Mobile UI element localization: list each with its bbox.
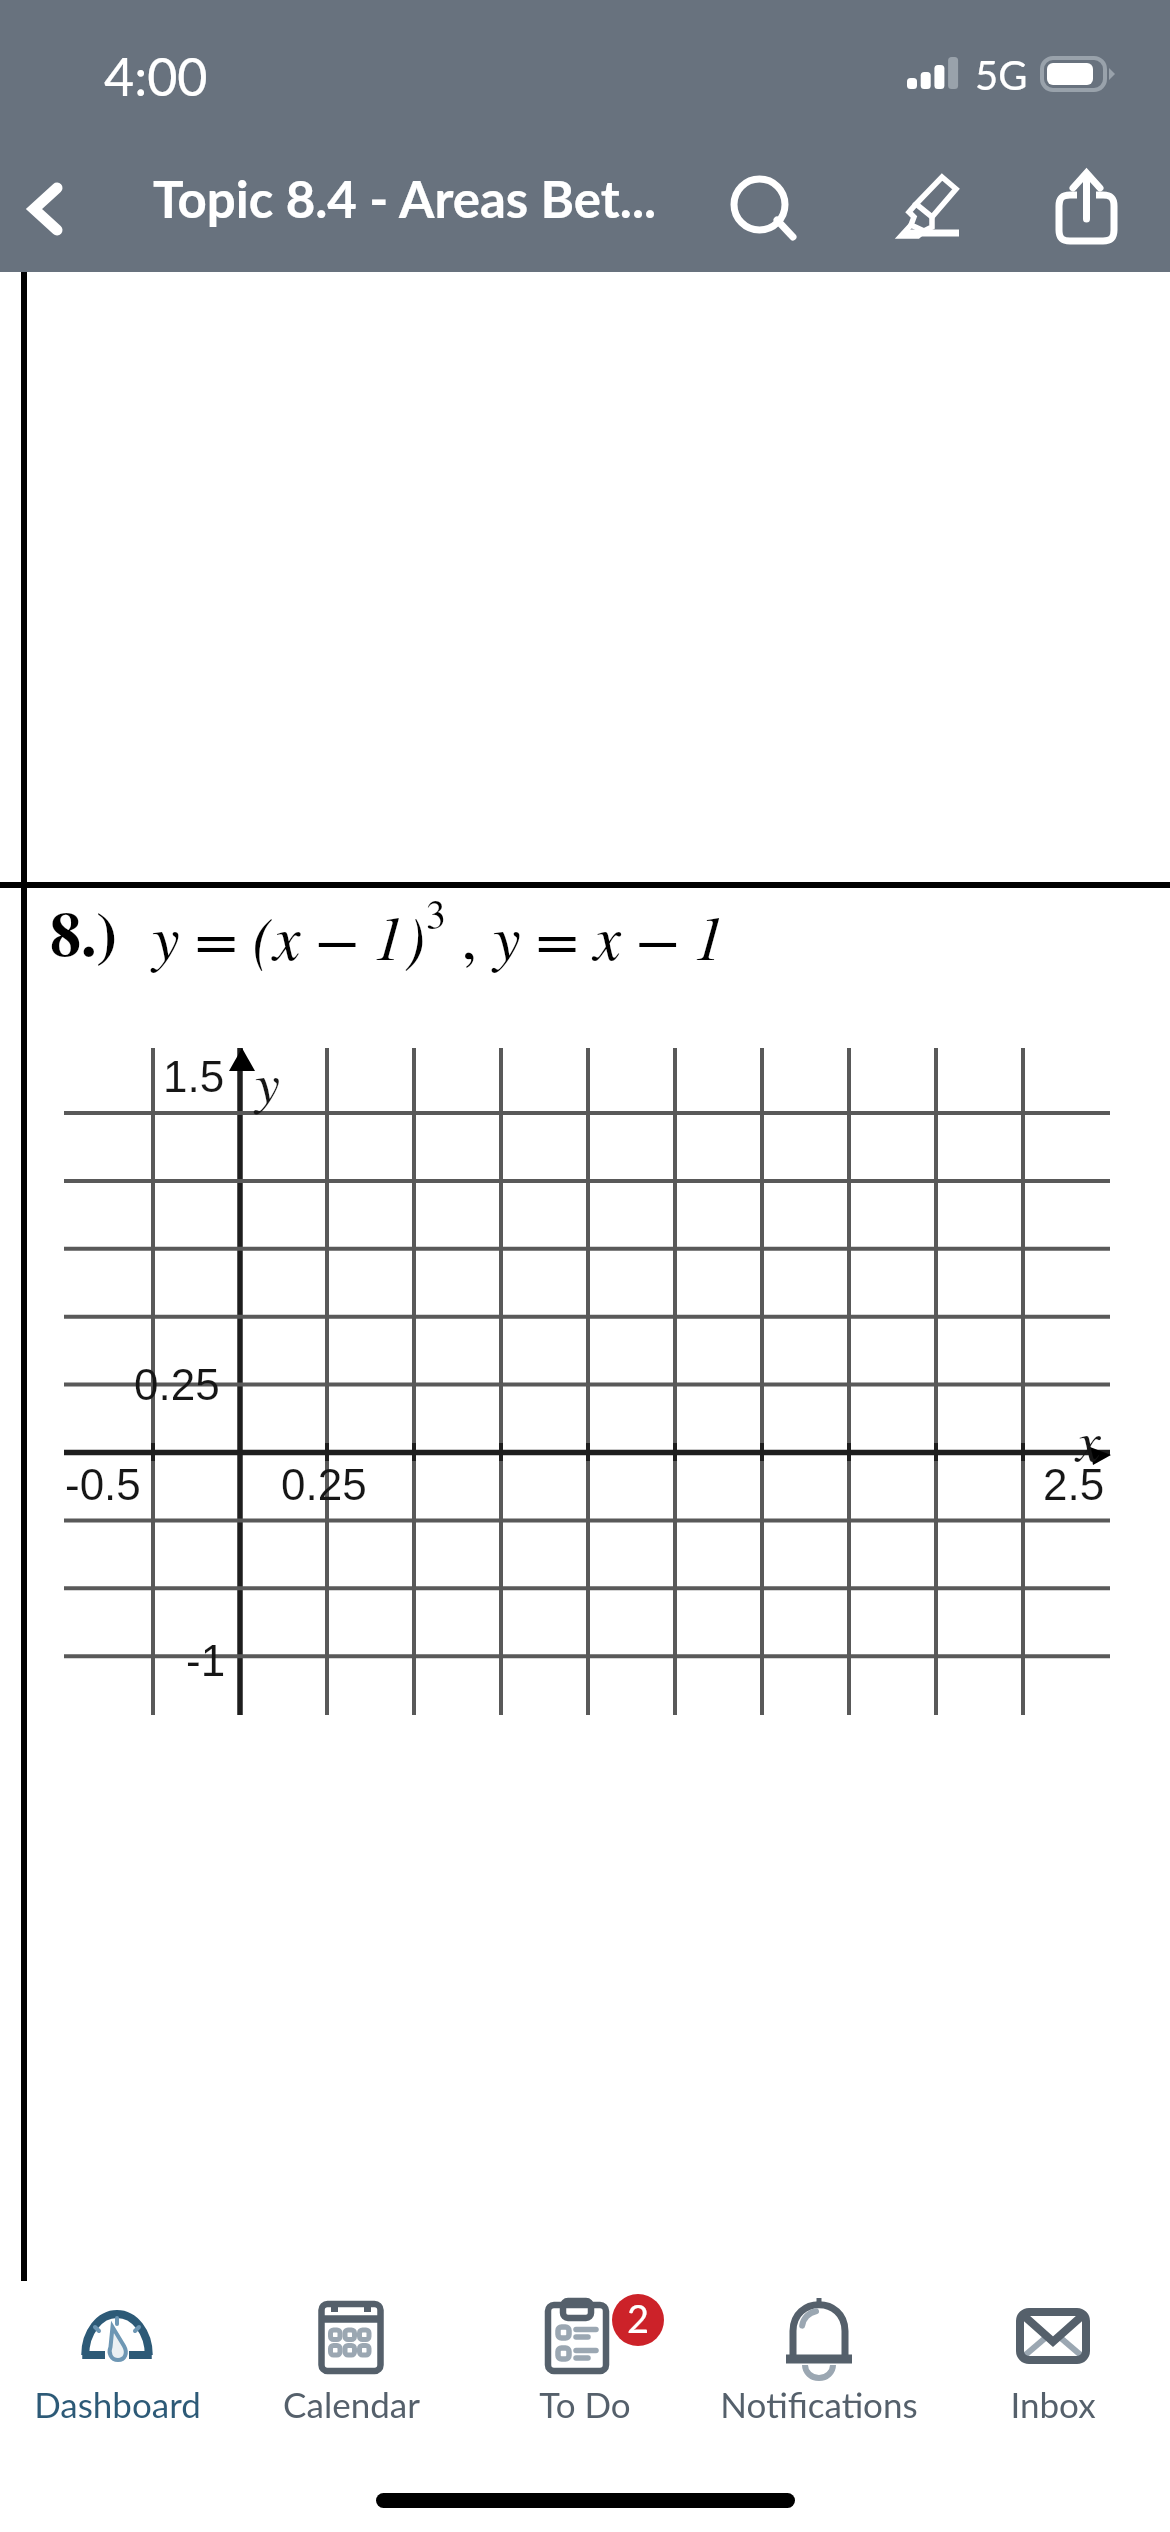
staticText: -0.5 <box>65 1460 141 1509</box>
staticText: x <box>1076 1401 1101 1476</box>
staticText: To Do <box>539 2383 631 2425</box>
staticText: 4:00 <box>104 45 208 107</box>
button[interactable]: Search <box>699 149 819 269</box>
staticText: Inbox <box>1010 2383 1096 2425</box>
staticText: y = (x − 1) <box>152 894 426 977</box>
staticText: 2.5 <box>1043 1460 1105 1509</box>
staticText: 5G <box>975 51 1028 99</box>
button[interactable]: Notifications <box>702 2281 936 2425</box>
button[interactable]: Share <box>1013 141 1133 261</box>
button[interactable]: Inbox <box>936 2281 1170 2425</box>
button[interactable]: Highlight <box>868 137 988 257</box>
staticText: y <box>255 1043 280 1118</box>
button[interactable]: Dashboard <box>0 2281 234 2425</box>
button[interactable]: Calendar <box>234 2281 468 2425</box>
staticText: 8.) <box>50 887 118 977</box>
staticText: , <box>446 894 493 977</box>
staticText: Topic 8.4 - Areas Bet... <box>153 168 657 229</box>
button[interactable]: Back <box>7 154 127 274</box>
staticText: 1.5 <box>163 1052 225 1101</box>
staticText: Dashboard <box>34 2383 201 2425</box>
staticText: 0.25 <box>134 1360 220 1409</box>
staticText: Notifications <box>720 2383 918 2425</box>
staticText: Calendar <box>283 2383 420 2425</box>
staticText: y = x − 1 <box>493 894 725 977</box>
staticText: 3 <box>426 886 446 939</box>
staticText: 0.25 <box>281 1460 367 1509</box>
staticText: -1 <box>186 1636 226 1685</box>
button[interactable]: 2 <box>468 2281 702 2425</box>
staticText: 2 <box>627 2295 650 2341</box>
